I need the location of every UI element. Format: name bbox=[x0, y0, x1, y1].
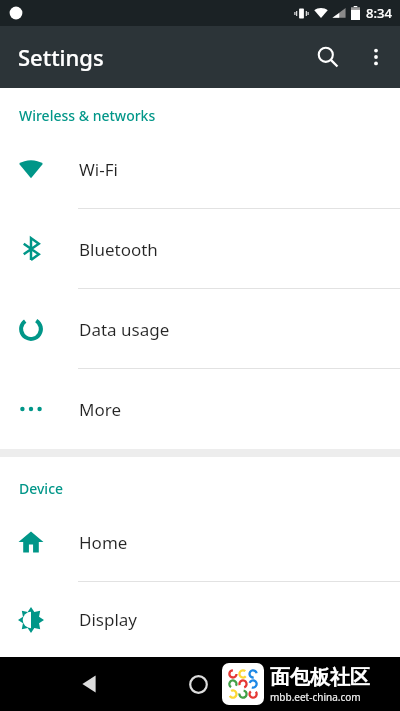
button[interactable]: More options bbox=[352, 33, 400, 81]
staticText: Data usage bbox=[79, 318, 170, 341]
staticText: Device bbox=[19, 479, 64, 498]
staticText: 8:34 bbox=[366, 4, 392, 22]
button[interactable]: Data usage bbox=[0, 289, 400, 369]
staticText: mbb.eet-china.com bbox=[270, 690, 361, 704]
staticText: Display bbox=[79, 608, 137, 631]
staticText: Wi-Fi bbox=[79, 158, 118, 181]
button[interactable]: Home bbox=[174, 660, 222, 708]
staticText: Wireless & networks bbox=[19, 106, 156, 125]
staticText: Bluetooth bbox=[79, 238, 158, 261]
button[interactable]: Search bbox=[304, 33, 352, 81]
staticText: Home bbox=[79, 531, 128, 554]
staticText: Settings bbox=[18, 42, 104, 72]
button[interactable]: More bbox=[0, 369, 400, 449]
button[interactable]: Home bbox=[0, 502, 400, 582]
button[interactable]: Back bbox=[66, 660, 114, 708]
button[interactable]: Bluetooth bbox=[0, 209, 400, 289]
button[interactable]: Display bbox=[0, 582, 400, 657]
staticText: More bbox=[79, 398, 121, 421]
button[interactable]: Wi-Fi bbox=[0, 129, 400, 209]
staticText: 面包板社区 bbox=[270, 665, 370, 690]
